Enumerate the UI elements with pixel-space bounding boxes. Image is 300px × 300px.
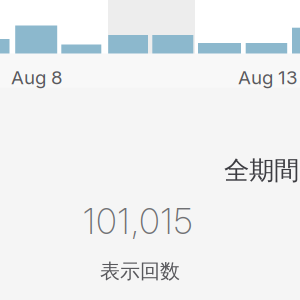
staticText: 全期間 [224, 155, 299, 186]
staticText: 101,015 [83, 201, 193, 242]
button[interactable]: 全期間 [224, 155, 299, 186]
staticText: Aug 13 [238, 66, 298, 88]
staticText: Aug 8 [11, 66, 63, 88]
staticText: 表示回数 [100, 259, 180, 284]
